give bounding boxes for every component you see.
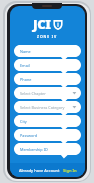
staticText: ZONE IV (37, 34, 58, 39)
staticText: Password (20, 133, 38, 138)
button[interactable]: Phone (14, 73, 81, 87)
button[interactable]: Membership ID (14, 143, 81, 157)
button[interactable]: Email (14, 59, 81, 73)
button[interactable]: City (14, 115, 81, 129)
button[interactable]: JCI (33, 15, 63, 33)
staticText: Phone (20, 77, 32, 82)
staticText: Membership ID (20, 147, 48, 152)
staticText: Name (20, 49, 31, 54)
staticText: Sign In (63, 168, 77, 173)
button[interactable]: Name (14, 45, 81, 59)
staticText: City (20, 119, 27, 124)
button[interactable]: Already have Account (19, 168, 77, 173)
staticText: JCI (33, 15, 51, 33)
staticText: Already have Account (19, 168, 60, 173)
button[interactable]: Select Business Category (14, 101, 81, 115)
other: JCI emblem (53, 19, 63, 30)
button[interactable]: Select Chapter (14, 87, 81, 101)
staticText: Email (20, 63, 30, 68)
staticText: Select Chapter (20, 91, 46, 96)
staticText: Select Business Category (20, 105, 65, 110)
button[interactable]: Password (14, 129, 81, 143)
